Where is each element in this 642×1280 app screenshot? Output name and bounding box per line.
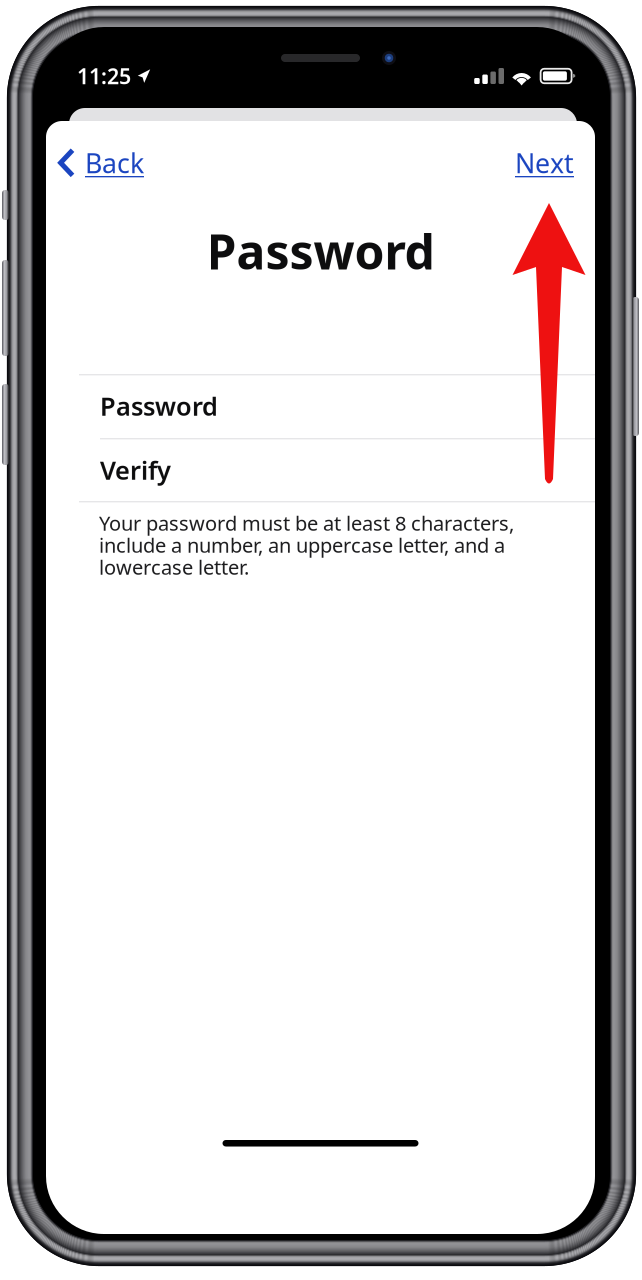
staticText: include a number, an uppercase letter, a… bbox=[99, 532, 505, 558]
button[interactable]: Back bbox=[58, 141, 148, 185]
staticText: Password bbox=[206, 219, 434, 283]
staticText: Your password must be at least 8 charact… bbox=[99, 510, 514, 536]
staticText: Back bbox=[85, 145, 144, 181]
staticText: Verify bbox=[100, 453, 171, 487]
staticText: lowercase letter. bbox=[99, 554, 249, 580]
staticText: 11:25 bbox=[77, 62, 131, 90]
button[interactable]: Next bbox=[502, 141, 574, 185]
staticText: Next bbox=[515, 145, 574, 181]
staticText: Password bbox=[100, 389, 218, 423]
